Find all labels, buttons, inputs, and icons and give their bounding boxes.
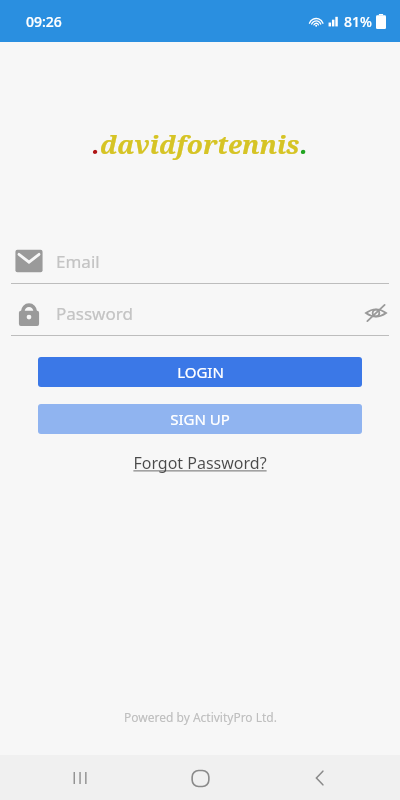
button[interactable]: Email bbox=[0, 239, 400, 284]
button[interactable]: SIGN UP bbox=[38, 404, 362, 434]
other: Password bbox=[15, 299, 43, 327]
button[interactable]: Password bbox=[0, 291, 400, 336]
button[interactable]: Home bbox=[180, 758, 220, 798]
staticText: . bbox=[300, 126, 308, 161]
staticText: davidfortennis bbox=[100, 126, 300, 161]
button[interactable]: Back bbox=[300, 758, 340, 798]
staticText: SIGN UP bbox=[170, 409, 230, 429]
button[interactable]: Forgot Password? bbox=[129, 448, 271, 478]
staticText: Password bbox=[56, 302, 364, 325]
button[interactable]: Show password bbox=[364, 301, 388, 325]
other: Email bbox=[15, 247, 43, 275]
staticText: Powered by ActivityPro Ltd. bbox=[124, 709, 277, 725]
staticText: LOGIN bbox=[177, 362, 224, 382]
button[interactable]: Recents bbox=[60, 758, 100, 798]
staticText: . bbox=[92, 126, 100, 161]
staticText: 09:26 bbox=[26, 12, 62, 31]
staticText: Email bbox=[56, 250, 388, 273]
button[interactable]: LOGIN bbox=[38, 357, 362, 387]
staticText: 81% bbox=[344, 12, 372, 31]
